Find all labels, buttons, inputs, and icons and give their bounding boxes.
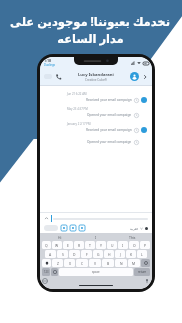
button[interactable]: M xyxy=(128,259,140,267)
staticText: F xyxy=(86,252,88,257)
staticText: space xyxy=(92,270,100,274)
staticText: P xyxy=(144,243,147,248)
button[interactable]: Backspace xyxy=(141,259,150,267)
button[interactable]: P xyxy=(140,241,150,249)
button[interactable]: L xyxy=(137,250,147,258)
button[interactable]: Q xyxy=(42,241,51,249)
button[interactable]: E xyxy=(63,241,73,249)
staticText: M xyxy=(132,261,136,266)
staticText: Opened your email campaign xyxy=(87,113,132,117)
staticText: A xyxy=(49,252,52,257)
button[interactable]: A xyxy=(45,250,56,258)
staticText: Creative Cube® xyxy=(85,78,108,82)
staticText: D xyxy=(73,252,76,257)
staticText: I xyxy=(95,235,97,240)
button[interactable]: Received your email campaign xyxy=(45,97,147,103)
button[interactable]: J xyxy=(115,250,125,258)
staticText: N xyxy=(120,261,123,266)
button[interactable]: Clock xyxy=(61,225,67,231)
button[interactable]: Globe xyxy=(42,278,48,284)
button[interactable]: F xyxy=(81,250,92,258)
staticText: Lucy Iskandarani xyxy=(78,72,114,78)
button[interactable]: Z xyxy=(52,259,63,267)
staticText: W xyxy=(55,243,59,248)
button[interactable]: Dictation xyxy=(144,278,150,284)
staticText: K xyxy=(130,252,133,257)
staticText: العربية xyxy=(130,227,139,230)
button[interactable]: C xyxy=(76,259,88,267)
button[interactable]: Opened your email campaign xyxy=(45,139,147,145)
staticText: U xyxy=(111,243,114,248)
button[interactable]: Call xyxy=(55,73,62,80)
staticText: I xyxy=(122,243,124,248)
button[interactable]: G xyxy=(93,250,103,258)
button[interactable]: Numbers xyxy=(42,268,50,276)
button[interactable]: return xyxy=(134,268,150,276)
staticText: return xyxy=(138,270,147,274)
staticText: O xyxy=(133,243,136,248)
button[interactable]: T xyxy=(85,241,95,249)
button[interactable]: W xyxy=(52,241,62,249)
staticText: Duolingo xyxy=(44,63,56,67)
button[interactable]: K xyxy=(126,250,136,258)
button[interactable]: S xyxy=(57,250,68,258)
staticText: May 23 4:37 PM xyxy=(67,107,88,111)
button[interactable]: I xyxy=(78,234,114,240)
staticText: 1:18 xyxy=(44,58,52,63)
button[interactable]: Y xyxy=(96,241,106,249)
button[interactable]: V xyxy=(89,259,101,267)
button[interactable]: X xyxy=(64,259,75,267)
staticText: X xyxy=(69,261,71,266)
staticText: مدار الساعه xyxy=(57,31,124,47)
button[interactable]: Emoji xyxy=(79,225,85,231)
button[interactable]: Opened your email campaign xyxy=(45,112,147,118)
button[interactable]: N xyxy=(115,259,127,267)
button[interactable]: This xyxy=(114,234,150,240)
button[interactable]: space xyxy=(59,268,133,276)
staticText: G xyxy=(97,252,100,257)
staticText: Jun 21 6:22 AM xyxy=(67,92,87,96)
staticText: V xyxy=(94,261,97,266)
button[interactable]: U xyxy=(107,241,117,249)
staticText: 123 xyxy=(44,270,49,274)
staticText: Received your email campaign xyxy=(86,128,132,132)
staticText: E xyxy=(67,243,69,248)
staticText: Q xyxy=(45,243,48,248)
staticText: Received your email campaign xyxy=(86,98,132,102)
staticText: نخدمك بعيوننا! موجودين على xyxy=(10,14,170,30)
button[interactable]: Image xyxy=(70,225,76,231)
button[interactable]: Send xyxy=(44,225,58,231)
staticText: Z xyxy=(57,261,59,266)
button[interactable]: Received your email campaign xyxy=(45,127,147,133)
button[interactable]: I xyxy=(118,241,128,249)
staticText: S xyxy=(62,252,64,257)
staticText: Y xyxy=(100,243,102,248)
staticText: January 2 2:17 PM xyxy=(67,122,91,126)
button[interactable]: Expand xyxy=(44,216,49,221)
button[interactable]: Shift xyxy=(42,259,51,267)
staticText: This xyxy=(129,235,136,240)
staticText: T xyxy=(89,243,91,248)
button[interactable]: R xyxy=(74,241,84,249)
button[interactable]: Hi xyxy=(42,234,78,240)
button[interactable]: Emoji xyxy=(51,268,58,276)
staticText: R xyxy=(78,243,81,248)
button[interactable]: O xyxy=(129,241,139,249)
staticText: L xyxy=(141,252,143,257)
button[interactable]: H xyxy=(104,250,114,258)
staticText: Opened your email campaign xyxy=(87,140,132,144)
staticText: B xyxy=(107,261,110,266)
staticText: Hi xyxy=(58,235,62,240)
staticText: H xyxy=(108,252,111,257)
staticText: J xyxy=(120,252,121,257)
button[interactable]: B xyxy=(102,259,114,267)
button[interactable]: D xyxy=(69,250,80,258)
staticText: C xyxy=(81,261,84,266)
button[interactable]: More xyxy=(142,74,148,80)
button[interactable]: Profile xyxy=(130,72,139,81)
